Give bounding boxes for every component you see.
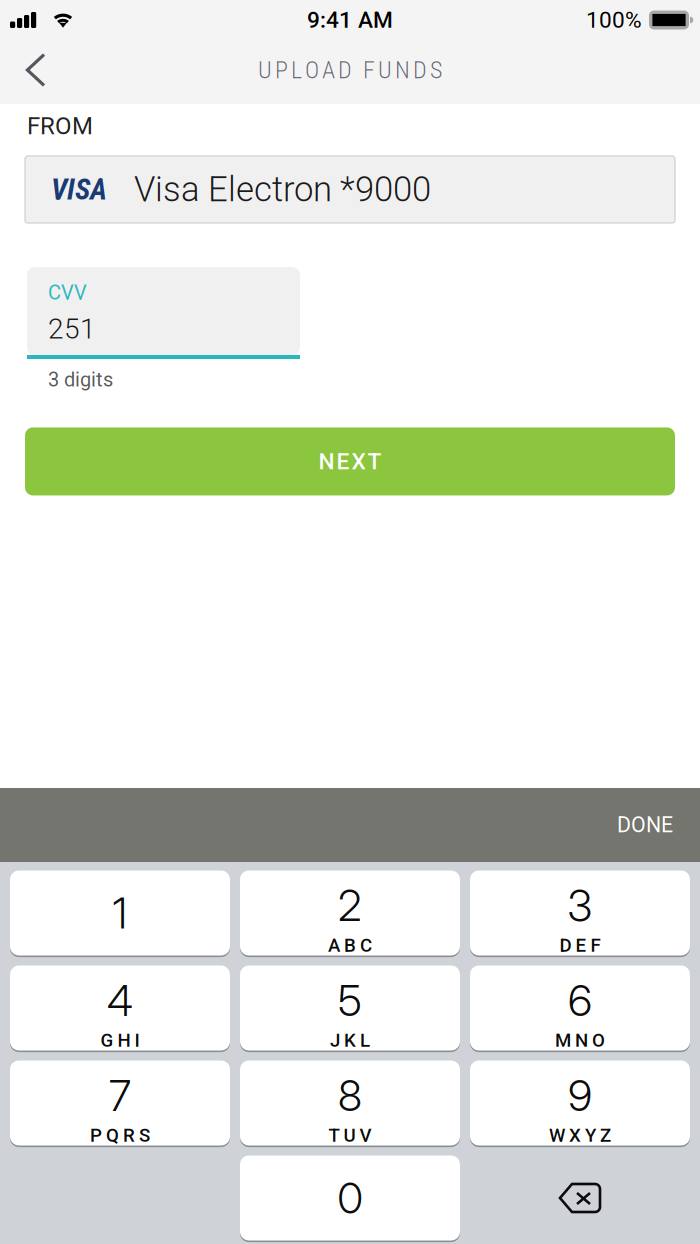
staticText: G H I bbox=[100, 1029, 139, 1051]
staticText: D E F bbox=[559, 934, 600, 956]
staticText: T U V bbox=[328, 1124, 371, 1146]
staticText: 7 bbox=[109, 1070, 131, 1121]
button[interactable]: 6 bbox=[470, 964, 690, 1051]
button[interactable]: N E X T bbox=[25, 427, 675, 495]
staticText: 9:41 AM bbox=[307, 7, 393, 33]
staticText: 9 bbox=[568, 1070, 592, 1121]
button[interactable]: 4 bbox=[10, 964, 230, 1051]
staticText: W X Y Z bbox=[549, 1124, 611, 1146]
button[interactable]: 9 bbox=[470, 1059, 690, 1146]
button[interactable]: 5 bbox=[240, 964, 460, 1051]
button[interactable]: DONE bbox=[603, 802, 687, 847]
staticText: 5 bbox=[338, 975, 362, 1026]
staticText: VISA bbox=[51, 172, 107, 207]
staticText: 8 bbox=[338, 1070, 362, 1121]
staticText: 2 bbox=[338, 880, 362, 931]
staticText: P Q R S bbox=[90, 1124, 150, 1146]
button[interactable]: Delete bbox=[470, 1154, 690, 1241]
staticText: FROM bbox=[27, 112, 93, 140]
staticText: M N O bbox=[555, 1029, 605, 1051]
button[interactable]: 2 bbox=[240, 869, 460, 956]
button[interactable]: 0 bbox=[240, 1154, 460, 1241]
staticText: 0 bbox=[337, 1172, 362, 1224]
staticText: A B C bbox=[328, 934, 372, 956]
button[interactable]: 1 bbox=[10, 869, 230, 956]
staticText: 100% bbox=[586, 7, 642, 33]
staticText: CVV bbox=[48, 281, 87, 304]
staticText: Visa Electron *9000 bbox=[134, 169, 431, 210]
button[interactable]: VISA bbox=[25, 156, 675, 223]
button[interactable]: 3 bbox=[470, 869, 690, 956]
staticText: 6 bbox=[568, 975, 592, 1026]
staticText: U P L O A D F U N D S bbox=[258, 56, 442, 84]
staticText: 3 digits bbox=[48, 368, 113, 391]
staticText: DONE bbox=[617, 812, 673, 837]
staticText: 3 bbox=[567, 880, 592, 931]
staticText: J K L bbox=[330, 1029, 370, 1051]
staticText: 1 bbox=[112, 887, 127, 939]
staticText: 4 bbox=[107, 975, 133, 1026]
button[interactable]: 8 bbox=[240, 1059, 460, 1146]
button[interactable]: Back bbox=[0, 38, 72, 102]
staticText: 251 bbox=[48, 312, 96, 345]
staticText: N E X T bbox=[318, 448, 381, 475]
button[interactable]: 7 bbox=[10, 1059, 230, 1146]
